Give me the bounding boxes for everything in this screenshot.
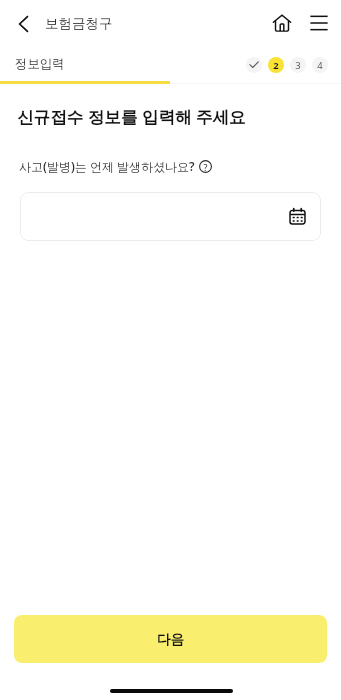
staticText: 4 [317,59,323,72]
staticText: 다음 [157,631,184,648]
staticText: 3 [295,59,301,72]
button[interactable]: Help [197,158,213,174]
staticText: 신규접수 정보를 입력해 주세요 [17,105,246,128]
button[interactable]: 3 [290,57,306,73]
button[interactable]: 2 [268,57,284,73]
staticText: ? [203,161,208,173]
staticText: 2 [273,59,279,72]
staticText: 정보입력 [15,56,65,72]
button[interactable]: Home [263,0,301,46]
button[interactable]: Back [1,1,47,47]
button[interactable]: 다음 [14,615,327,663]
button[interactable]: Completed step [246,57,262,73]
button[interactable]: Menu [297,0,341,46]
button[interactable]: Select accident date [20,192,321,241]
staticText: 보험금청구 [45,15,113,32]
staticText: 사고(발병)는 언제 발생하셨나요? [19,158,195,174]
button[interactable]: 4 [312,57,328,73]
